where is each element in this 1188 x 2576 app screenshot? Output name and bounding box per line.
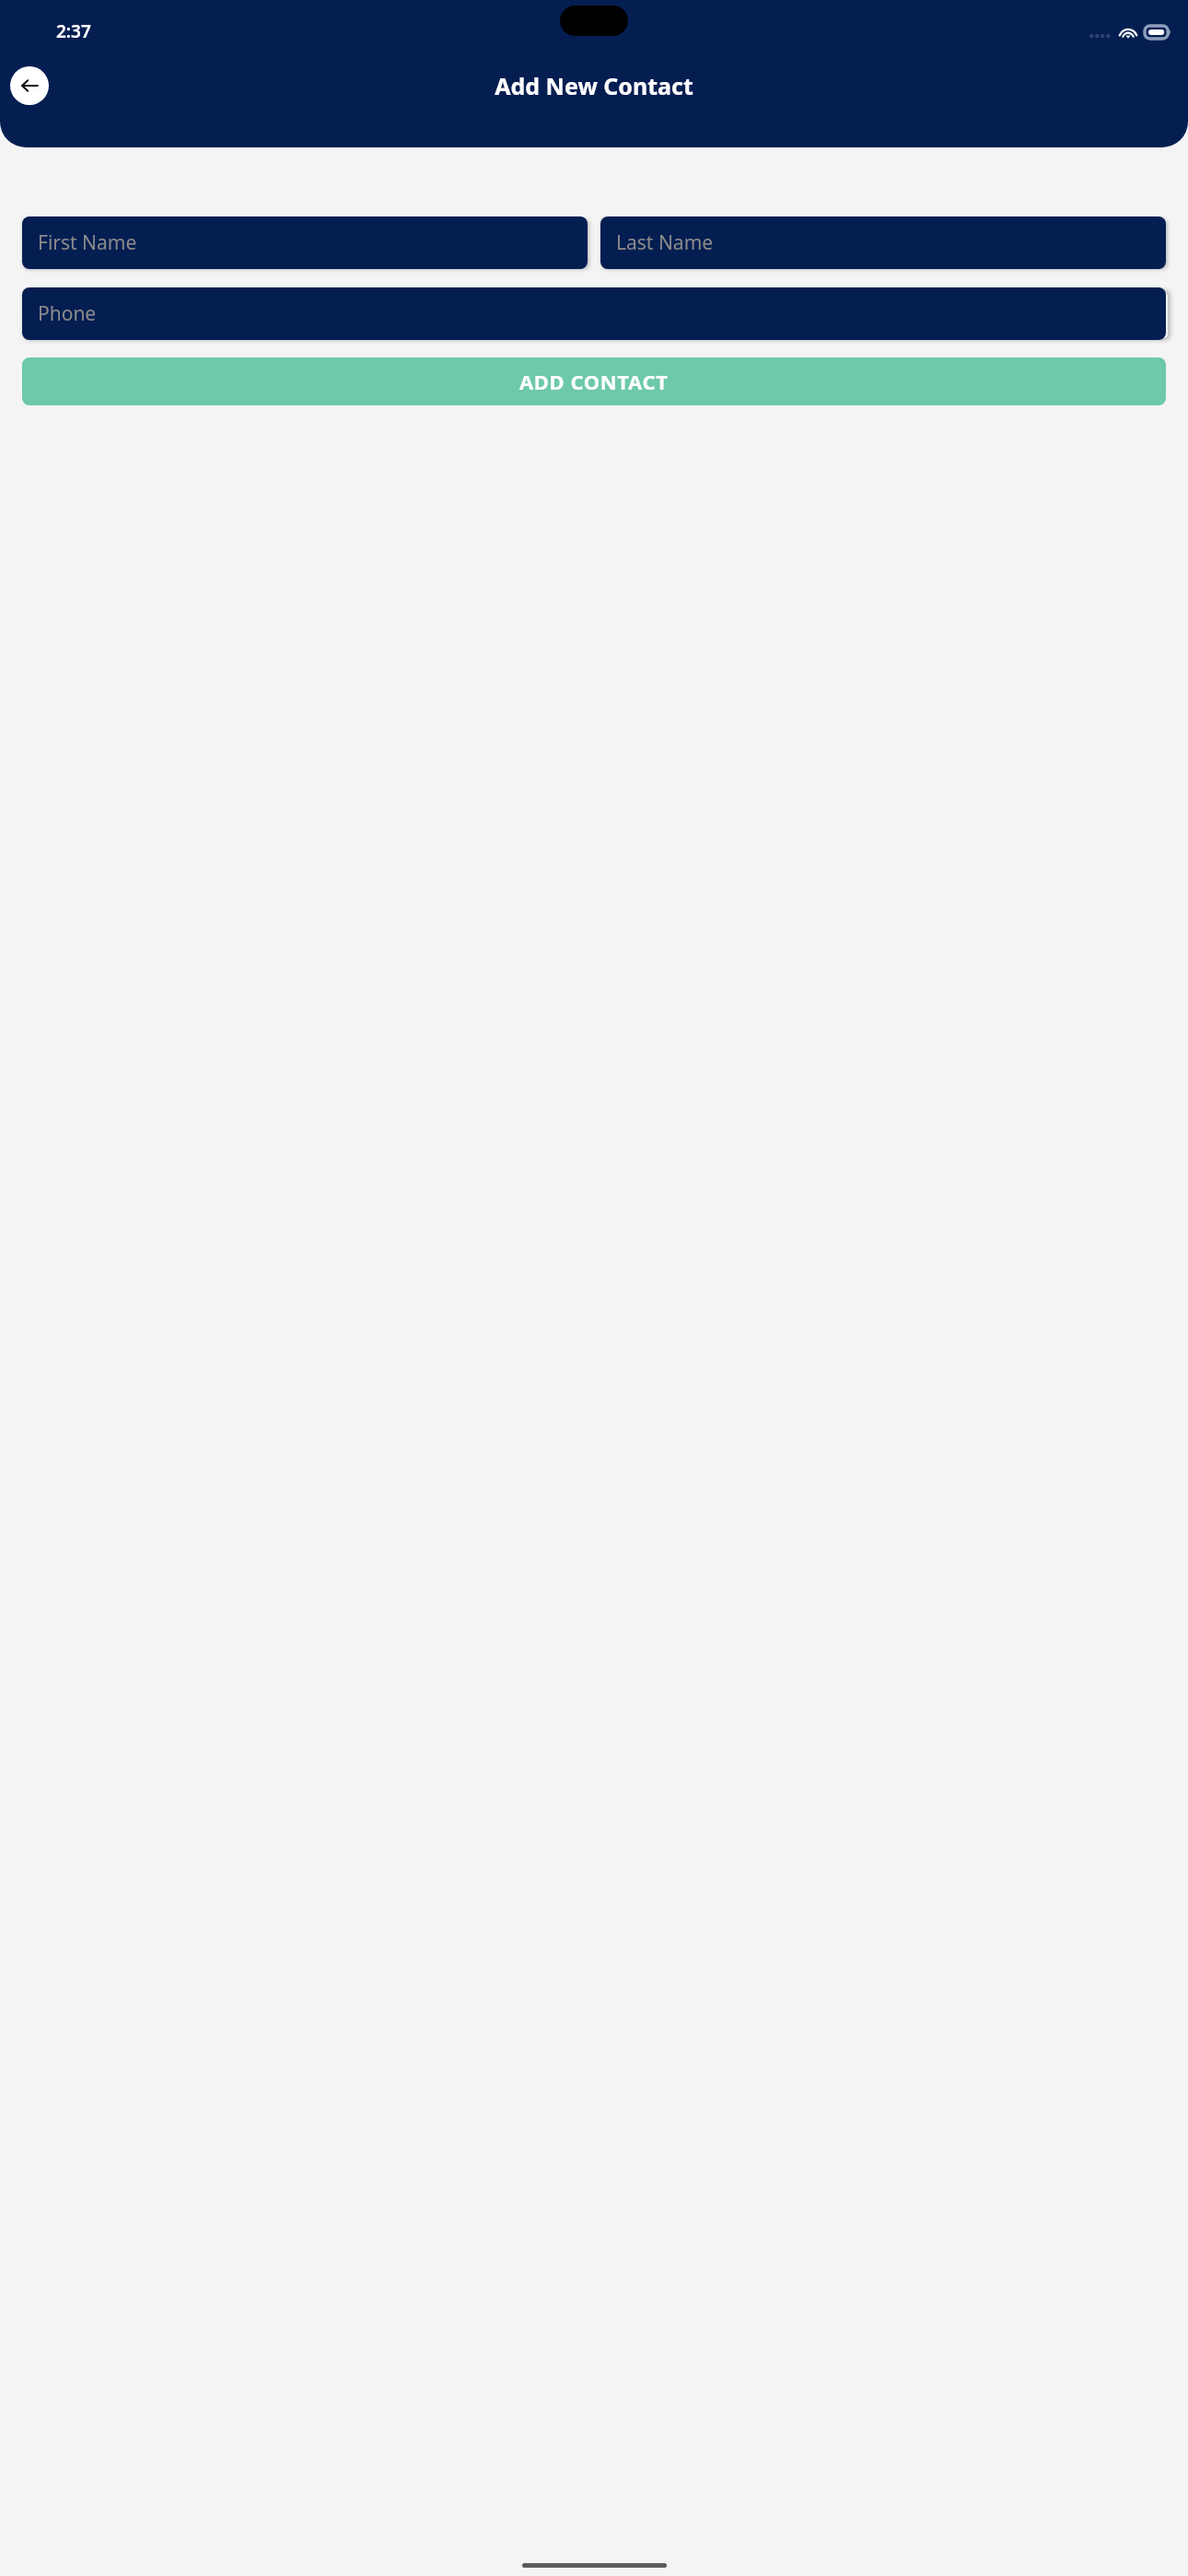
- button[interactable]: Back: [10, 66, 49, 105]
- staticText: 2:37: [56, 19, 91, 43]
- staticText: Phone: [38, 300, 97, 327]
- staticText: Last Name: [616, 229, 714, 256]
- staticText: Add New Contact: [495, 70, 693, 101]
- staticText: ADD CONTACT: [519, 368, 669, 395]
- staticText: First Name: [38, 229, 137, 256]
- button[interactable]: ADD CONTACT: [22, 357, 1166, 405]
- button[interactable]: Phone: [22, 287, 1166, 340]
- button[interactable]: Last Name: [600, 217, 1166, 269]
- button[interactable]: First Name: [22, 217, 588, 269]
